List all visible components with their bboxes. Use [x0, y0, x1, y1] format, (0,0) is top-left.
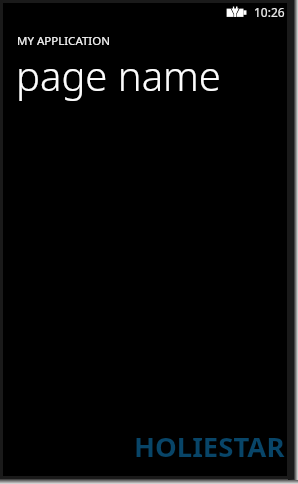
button[interactable]: page name [13, 44, 221, 106]
staticText: page name [16, 48, 221, 102]
staticText: MY APPLICATION [17, 33, 110, 47]
button[interactable]: System status [221, 3, 287, 23]
button[interactable]: MY APPLICATION [14, 29, 110, 47]
staticText: HOLIESTAR [134, 428, 285, 465]
staticText: 10:26 [254, 4, 285, 20]
other: Battery charging [226, 5, 248, 20]
